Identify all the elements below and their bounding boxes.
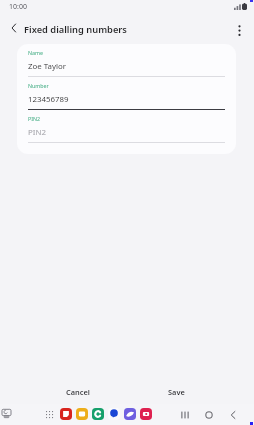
button[interactable]: Files — [76, 408, 88, 420]
staticText: PIN2 — [28, 127, 46, 138]
staticText: Fixed dialling numbers — [24, 23, 127, 36]
button[interactable]: More options — [228, 19, 250, 41]
button[interactable]: Camera — [140, 408, 152, 420]
button[interactable]: Home — [197, 406, 221, 424]
staticText: Name — [28, 49, 43, 56]
button[interactable]: Gallery — [124, 408, 136, 420]
staticText: Zoe Taylor — [28, 61, 67, 72]
button[interactable]: Reddit — [60, 408, 72, 420]
staticText: 10:00 — [9, 2, 27, 12]
staticText: 123456789 — [28, 94, 69, 105]
button[interactable]: Recent apps — [173, 406, 197, 424]
button[interactable]: Cancel — [66, 387, 90, 397]
button[interactable]: Contacts — [92, 408, 104, 420]
button[interactable]: Name — [28, 44, 225, 77]
staticText: Number — [28, 82, 49, 89]
button[interactable]: Save — [168, 387, 185, 397]
button[interactable]: PIN2 — [28, 110, 225, 143]
button[interactable]: Navigate up — [2, 16, 26, 40]
button[interactable]: Screen capture — [0, 407, 13, 420]
staticText: PIN2 — [28, 115, 41, 122]
button[interactable]: All apps — [43, 408, 55, 420]
button[interactable]: Number — [28, 77, 225, 110]
button[interactable]: Messages — [108, 408, 120, 420]
button[interactable]: Back — [221, 406, 245, 424]
